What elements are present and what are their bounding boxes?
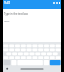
staticText: Hello — [4, 20, 10, 23]
button[interactable]: Key — [43, 57, 49, 61]
button[interactable]: Key — [55, 45, 61, 49]
button[interactable]: Key — [19, 49, 25, 53]
button[interactable]: Key — [31, 45, 37, 49]
button[interactable]: Key — [13, 57, 19, 61]
button[interactable]: Key — [8, 49, 13, 53]
button[interactable]: Key — [8, 57, 13, 61]
button[interactable]: Key — [37, 45, 43, 49]
button[interactable]: Home — [10, 67, 61, 72]
button[interactable]: Key — [3, 53, 8, 57]
button[interactable]: Space — [17, 62, 43, 67]
button[interactable]: Key — [55, 53, 61, 57]
button[interactable]: Key — [25, 57, 31, 61]
button[interactable]: Key — [31, 57, 37, 61]
button[interactable]: Symbols — [3, 62, 11, 67]
button[interactable]: Key — [31, 49, 37, 53]
staticText: Type in the text box — [4, 12, 28, 16]
button[interactable]: Key — [43, 53, 49, 57]
button[interactable]: Key — [31, 53, 37, 57]
button[interactable]: Comma — [11, 62, 17, 67]
button[interactable]: Key — [37, 49, 43, 53]
button[interactable]: Key — [49, 49, 55, 53]
button[interactable]: Period — [43, 62, 49, 67]
button[interactable]: Key — [49, 45, 55, 49]
button[interactable]: Key — [13, 45, 19, 49]
button[interactable]: Send — [49, 62, 61, 67]
button[interactable]: Key — [37, 53, 43, 57]
button[interactable]: Key — [19, 53, 25, 57]
button[interactable]: Key — [25, 49, 31, 53]
button[interactable]: Key — [49, 57, 55, 61]
button[interactable]: Key — [19, 57, 25, 61]
button[interactable]: Hide keyboard — [3, 67, 10, 72]
button[interactable]: Key — [3, 49, 8, 53]
button[interactable]: Key — [43, 49, 49, 53]
button[interactable]: Key — [19, 45, 25, 49]
button[interactable]: Key — [3, 45, 8, 49]
button[interactable]: Key — [55, 57, 61, 61]
button[interactable]: Key — [55, 49, 61, 53]
button[interactable]: Key — [25, 45, 31, 49]
button[interactable]: Key — [13, 53, 19, 57]
button[interactable]: Key — [13, 49, 19, 53]
button[interactable]: Key — [43, 45, 49, 49]
button[interactable]: Key — [3, 57, 8, 61]
button[interactable]: Key — [25, 53, 31, 57]
button[interactable]: Key — [37, 57, 43, 61]
button[interactable]: Key — [8, 53, 13, 57]
button[interactable]: Key — [49, 53, 55, 57]
button[interactable]: Key — [8, 45, 13, 49]
staticText: 9:41 — [4, 1, 11, 5]
